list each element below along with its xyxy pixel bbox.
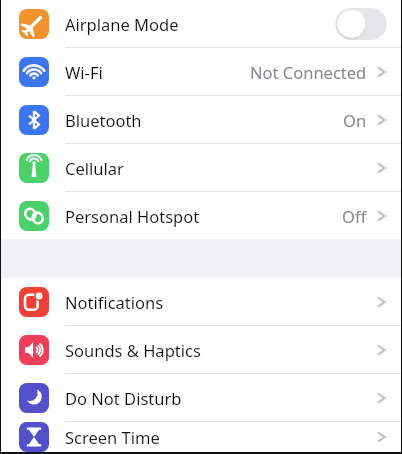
- button[interactable]: Do Not Disturb: [1, 374, 401, 421]
- button[interactable]: Notifications: [1, 278, 401, 325]
- button[interactable]: Wi-Fi: [1, 48, 401, 95]
- button[interactable]: Screen Time: [1, 422, 401, 452]
- staticText: Notifications: [65, 291, 164, 313]
- button[interactable]: Bluetooth: [1, 96, 401, 143]
- staticText: Not Connected: [250, 61, 367, 83]
- staticText: Do Not Disturb: [65, 387, 182, 409]
- staticText: Wi-Fi: [65, 61, 103, 83]
- button[interactable]: Sounds & Haptics: [1, 326, 401, 373]
- staticText: Airplane Mode: [65, 13, 179, 35]
- staticText: Bluetooth: [65, 109, 142, 131]
- staticText: Personal Hotspot: [65, 205, 200, 227]
- staticText: Screen Time: [65, 426, 160, 448]
- staticText: Cellular: [65, 157, 124, 179]
- staticText: Off: [342, 205, 367, 227]
- button[interactable]: Airplane Mode: [1, 0, 401, 47]
- staticText: Sounds & Haptics: [65, 339, 201, 361]
- button[interactable]: Cellular: [1, 144, 401, 191]
- staticText: On: [343, 109, 367, 131]
- button[interactable]: Personal Hotspot: [1, 192, 401, 239]
